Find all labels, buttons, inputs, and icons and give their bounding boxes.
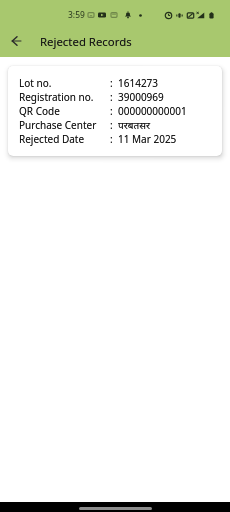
staticText: :	[110, 104, 113, 118]
staticText: :	[110, 76, 113, 90]
staticText: QR Code	[19, 104, 60, 118]
staticText: Lot no.	[19, 76, 52, 90]
staticText: :	[110, 90, 113, 104]
staticText: :	[110, 90, 113, 104]
staticText: Rejected Records	[40, 34, 132, 50]
staticText: 39000969	[118, 90, 164, 104]
staticText: :	[110, 104, 113, 118]
staticText: 39000969	[118, 90, 164, 104]
staticText: 11 Mar 2025	[118, 132, 177, 146]
staticText: Rejected Date	[19, 132, 85, 146]
staticText: Lot no.	[19, 76, 52, 90]
staticText: Rejected Records	[40, 34, 132, 50]
staticText: परबतसर	[118, 118, 151, 132]
staticText: 3:59	[68, 9, 85, 21]
staticText: :	[110, 118, 113, 132]
staticText: QR Code	[19, 104, 60, 118]
staticText: Registration no.	[19, 90, 94, 104]
staticText: 1614273	[118, 76, 159, 90]
staticText: परबतसर	[118, 118, 151, 132]
staticText: 000000000001	[118, 104, 187, 118]
staticText: Purchase Center	[19, 118, 97, 132]
staticText: Registration no.	[19, 90, 94, 104]
button[interactable]: Back	[5, 28, 29, 52]
staticText: 1614273	[118, 76, 159, 90]
staticText: 11 Mar 2025	[118, 132, 177, 146]
staticText: :	[110, 132, 113, 146]
staticText: :	[110, 132, 113, 146]
staticText: :	[110, 76, 113, 90]
button[interactable]: Lot no.	[8, 66, 222, 156]
staticText: 000000000001	[118, 104, 187, 118]
staticText: Purchase Center	[19, 118, 97, 132]
staticText: Rejected Date	[19, 132, 85, 146]
staticText: :	[110, 118, 113, 132]
